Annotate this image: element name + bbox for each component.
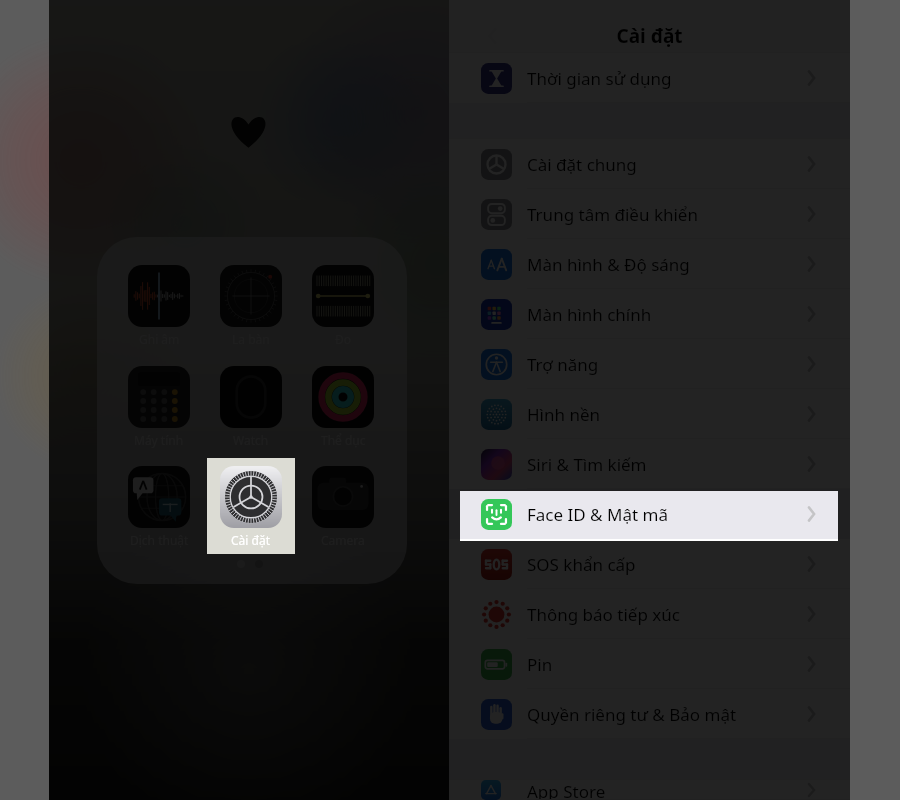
button[interactable]: Thời gian sử dụng bbox=[449, 53, 850, 103]
button[interactable]: Màn hình & Độ sáng bbox=[449, 239, 850, 289]
staticText: Cài đặt bbox=[231, 532, 271, 548]
staticText: Màn hình chính bbox=[527, 303, 805, 326]
staticText: Trợ năng bbox=[527, 353, 805, 376]
staticText: App Store bbox=[527, 780, 805, 800]
button[interactable]: La bàn bbox=[207, 257, 295, 353]
button[interactable]: Ghi âm bbox=[115, 257, 203, 353]
staticText: Cài đặt chung bbox=[527, 153, 805, 176]
button[interactable]: Watch bbox=[207, 358, 295, 454]
button[interactable]: Cài đặt bbox=[207, 458, 295, 554]
button[interactable]: Cài đặt chung bbox=[449, 139, 850, 189]
button[interactable]: App Store bbox=[449, 780, 850, 800]
staticText: SOS khẩn cấp bbox=[527, 553, 805, 576]
button[interactable]: Quyền riêng tư & Bảo mật bbox=[449, 689, 850, 739]
staticText: Trung tâm điều khiển bbox=[527, 203, 805, 226]
staticText: Hình nền bbox=[527, 403, 805, 426]
button[interactable]: Màn hình chính bbox=[449, 289, 850, 339]
button[interactable]: Thể dục bbox=[299, 358, 387, 454]
button[interactable]: Face ID & Mật mã bbox=[449, 489, 850, 539]
button[interactable]: SOS khẩn cấp bbox=[449, 539, 850, 589]
staticText: Pin bbox=[527, 653, 805, 676]
button[interactable]: Hình nền bbox=[449, 389, 850, 439]
staticText: Thời gian sử dụng bbox=[527, 67, 805, 90]
staticText: Siri & Tìm kiếm bbox=[527, 453, 805, 476]
staticText: Cài đặt bbox=[449, 23, 850, 49]
staticText: Face ID & Mật mã bbox=[527, 503, 805, 526]
staticText: Thông báo tiếp xúc bbox=[527, 603, 805, 626]
button[interactable]: Trung tâm điều khiển bbox=[449, 189, 850, 239]
button[interactable]: Đo bbox=[299, 257, 387, 353]
button[interactable]: Siri & Tìm kiếm bbox=[449, 439, 850, 489]
button[interactable]: Camera bbox=[299, 458, 387, 554]
button[interactable]: Pin bbox=[449, 639, 850, 689]
button[interactable]: Máy tính bbox=[115, 358, 203, 454]
staticText: Màn hình & Độ sáng bbox=[527, 253, 805, 276]
staticText: Quyền riêng tư & Bảo mật bbox=[527, 703, 805, 726]
button[interactable]: Dịch thuật bbox=[115, 458, 203, 554]
button[interactable]: Thông báo tiếp xúc bbox=[449, 589, 850, 639]
button[interactable]: Trợ năng bbox=[449, 339, 850, 389]
